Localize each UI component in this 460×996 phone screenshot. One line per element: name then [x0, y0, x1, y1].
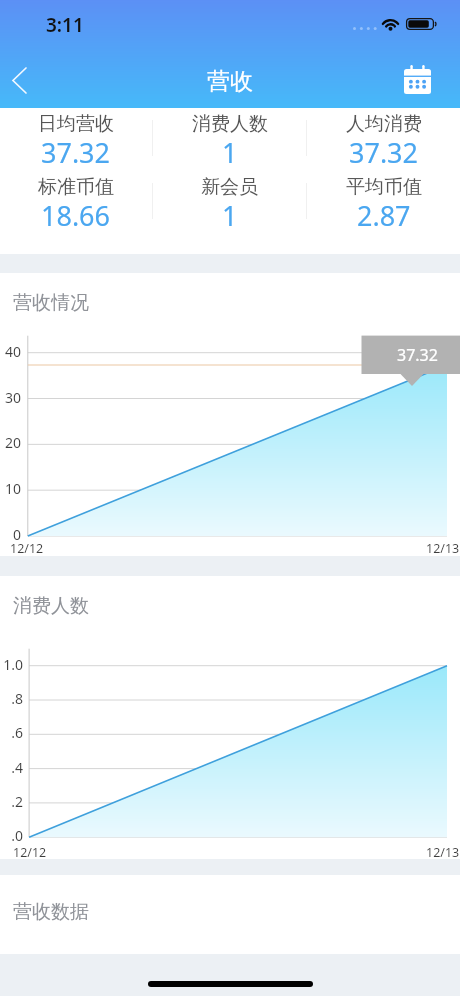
- staticText: 12/12: [10, 540, 44, 557]
- button[interactable]: 营收数据: [0, 875, 460, 954]
- staticText: 消费人数: [192, 112, 268, 136]
- staticText: 30: [0, 388, 21, 407]
- staticText: 营收: [207, 67, 253, 96]
- staticText: 12/13: [426, 844, 460, 861]
- staticText: 37.32: [349, 134, 419, 170]
- staticText: .2: [0, 792, 23, 811]
- staticText: 日均营收: [38, 112, 114, 136]
- staticText: 1: [222, 134, 238, 170]
- staticText: 18.66: [41, 197, 111, 233]
- staticText: .8: [0, 689, 23, 708]
- staticText: 20: [0, 433, 21, 452]
- staticText: 10: [0, 479, 21, 498]
- staticText: 0: [0, 525, 21, 544]
- staticText: .6: [0, 723, 23, 742]
- staticText: 营收数据: [13, 900, 89, 924]
- button[interactable]: Calendar: [397, 57, 438, 101]
- staticText: 1: [222, 197, 238, 233]
- staticText: 标准币值: [38, 175, 114, 199]
- staticText: 人均消费: [346, 112, 422, 136]
- staticText: 营收情况: [13, 291, 89, 315]
- button[interactable]: 日均营收: [0, 108, 152, 168]
- staticText: 平均币值: [346, 175, 422, 199]
- staticText: 1.0: [0, 655, 23, 674]
- staticText: 40: [0, 342, 21, 361]
- staticText: 新会员: [201, 175, 258, 199]
- staticText: 37.32: [41, 134, 111, 170]
- staticText: .4: [0, 758, 23, 777]
- staticText: 12/13: [426, 540, 460, 557]
- staticText: 2.87: [357, 197, 411, 233]
- staticText: 3:11: [46, 12, 84, 38]
- button[interactable]: Back: [0, 56, 38, 102]
- staticText: 消费人数: [13, 594, 89, 618]
- staticText: 37.32: [397, 344, 438, 366]
- button[interactable]: 平均币值: [307, 171, 460, 231]
- button[interactable]: 人均消费: [307, 108, 460, 168]
- staticText: .0: [0, 826, 23, 845]
- button[interactable]: 新会员: [153, 171, 306, 231]
- button[interactable]: 消费人数: [153, 108, 306, 168]
- staticText: 12/12: [13, 844, 47, 861]
- button[interactable]: 标准币值: [0, 171, 152, 231]
